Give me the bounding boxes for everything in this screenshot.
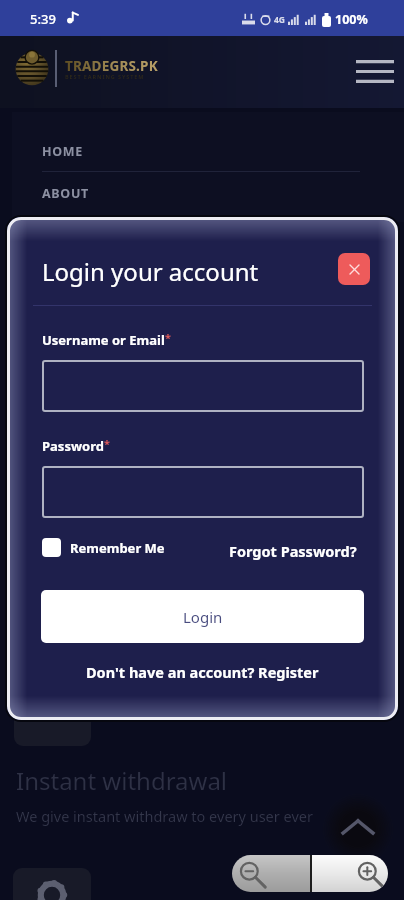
- button[interactable]: HOME: [0, 130, 404, 172]
- button[interactable]: [42, 360, 364, 412]
- staticText: Login: [183, 607, 223, 627]
- staticText: Username or Email: [42, 331, 165, 349]
- staticText: TRADEGRS.PK: [65, 57, 158, 75]
- staticText: 5:39: [30, 10, 56, 28]
- staticText: Remember Me: [70, 539, 165, 557]
- button[interactable]: Zoom in: [312, 855, 388, 892]
- staticText: *: [165, 330, 171, 345]
- staticText: BEST EARNING SYSTEM: [65, 73, 145, 80]
- staticText: Instant withdrawal: [16, 764, 228, 797]
- staticText: We give instant withdraw to every user e…: [16, 806, 313, 826]
- button[interactable]: Login: [41, 590, 364, 643]
- staticText: Password: [42, 437, 104, 455]
- button[interactable]: Close: [338, 253, 370, 285]
- button[interactable]: ABOUT: [0, 172, 404, 214]
- button[interactable]: Forgot Password?: [229, 541, 357, 561]
- button[interactable]: Menu: [350, 52, 400, 90]
- staticText: *: [104, 436, 110, 451]
- staticText: 4G: [274, 14, 286, 26]
- button[interactable]: [42, 466, 364, 518]
- button[interactable]: Don't have an account? Register: [86, 662, 319, 682]
- staticText: 100%: [335, 11, 368, 28]
- staticText: HOME: [42, 143, 84, 160]
- button[interactable]: Zoom out: [232, 855, 310, 892]
- staticText: ABOUT: [42, 185, 90, 202]
- staticText: Login your account: [42, 255, 259, 288]
- button[interactable]: Scroll to top: [322, 793, 394, 865]
- button[interactable]: Remember Me: [42, 538, 165, 557]
